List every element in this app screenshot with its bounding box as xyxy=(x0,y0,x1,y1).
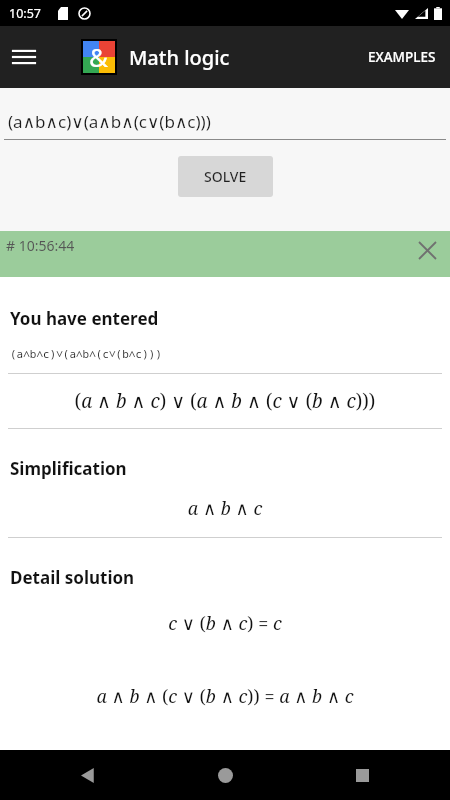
staticText: c ∨ (b ∧ c) = c xyxy=(0,611,450,636)
staticText: (a ∧ b ∧ c) ∨ (a ∧ b ∧ (c ∨ (b ∧ c))) xyxy=(0,388,450,414)
button[interactable]: (a∧b∧c)∨(a∧b∧(c∨(b∧c))) xyxy=(8,110,211,133)
staticText: Detail solution xyxy=(10,566,135,589)
button[interactable]: Recent apps xyxy=(340,753,384,797)
staticText: (a∧b∧c)∨(a∧b∧(c∨(b∧c))) xyxy=(10,346,162,361)
staticText: # 10:56:44 xyxy=(6,236,75,255)
staticText: Math logic xyxy=(129,44,230,71)
button[interactable]: Back xyxy=(66,753,110,797)
button[interactable]: EXAMPLES xyxy=(354,34,450,80)
button[interactable]: Open navigation menu xyxy=(0,33,48,81)
button[interactable]: SOLVE xyxy=(178,156,273,197)
staticText: a ∧ b ∧ (c ∨ (b ∧ c)) = a ∧ b ∧ c xyxy=(0,684,450,709)
staticText: & xyxy=(89,39,109,74)
staticText: SOLVE xyxy=(204,167,247,186)
staticText: 10:57 xyxy=(9,5,41,22)
button[interactable]: Close result xyxy=(404,231,450,277)
staticText: Simplification xyxy=(10,457,127,480)
staticText: EXAMPLES xyxy=(368,48,436,66)
staticText: a ∧ b ∧ c xyxy=(0,496,450,521)
button[interactable]: Home xyxy=(203,753,247,797)
staticText: You have entered xyxy=(10,307,159,330)
